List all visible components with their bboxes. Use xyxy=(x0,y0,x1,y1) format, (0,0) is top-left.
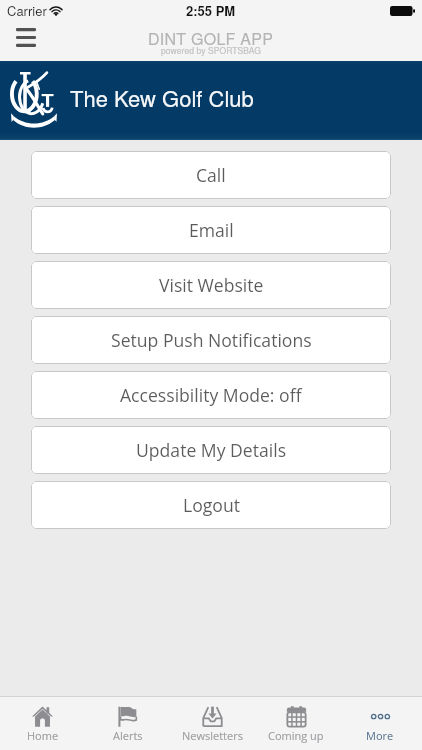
staticText: More xyxy=(366,728,394,743)
staticText: Alerts xyxy=(113,728,143,743)
button[interactable]: More xyxy=(338,697,422,750)
button[interactable]: Home xyxy=(0,697,85,750)
button[interactable]: Logout xyxy=(31,481,391,529)
staticText: Coming up xyxy=(268,728,324,743)
button[interactable]: Setup Push Notifications xyxy=(31,316,391,364)
staticText: Carrier xyxy=(7,1,47,20)
staticText: Email xyxy=(189,218,234,242)
staticText: Update My Details xyxy=(136,438,287,462)
staticText: Visit Website xyxy=(159,273,264,297)
button[interactable]: Alerts xyxy=(85,697,170,750)
button[interactable]: Call xyxy=(31,151,391,199)
button[interactable]: Coming up xyxy=(254,697,338,750)
button[interactable]: Update My Details xyxy=(31,426,391,474)
staticText: Setup Push Notifications xyxy=(111,328,312,352)
button[interactable]: Open navigation menu xyxy=(0,20,52,61)
staticText: Call xyxy=(196,163,226,187)
staticText: Accessibility Mode: off xyxy=(120,383,302,407)
staticText: Newsletters xyxy=(182,728,243,743)
button[interactable]: Accessibility Mode: off xyxy=(31,371,391,419)
staticText: Home xyxy=(27,728,59,743)
staticText: powered by SPORTSBAG xyxy=(161,44,261,56)
button[interactable]: Email xyxy=(31,206,391,254)
button[interactable]: Visit Website xyxy=(31,261,391,309)
staticText: 2:55 PM xyxy=(186,1,236,20)
staticText: Logout xyxy=(183,493,240,517)
staticText: DINT GOLF APP xyxy=(148,27,274,50)
staticText: The Kew Golf Club xyxy=(70,82,254,114)
button[interactable]: Newsletters xyxy=(170,697,254,750)
